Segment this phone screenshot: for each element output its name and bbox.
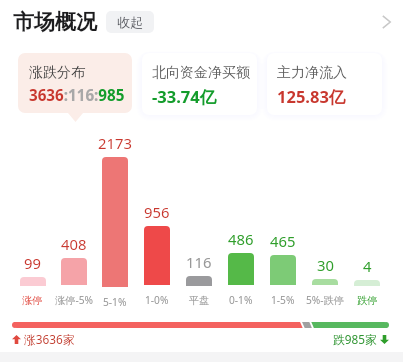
staticText: 465 bbox=[270, 231, 296, 251]
staticText: 956 bbox=[144, 202, 170, 222]
button[interactable] bbox=[186, 276, 212, 286]
staticText: 486 bbox=[228, 229, 254, 249]
staticText: 5-1% bbox=[103, 295, 127, 307]
button[interactable]: 收起 bbox=[106, 11, 154, 33]
staticText: 市场概况 bbox=[13, 9, 97, 35]
staticText: 涨停-5% bbox=[55, 293, 93, 307]
button[interactable] bbox=[61, 258, 87, 285]
button[interactable] bbox=[228, 253, 254, 285]
staticText: -33.74亿 bbox=[152, 85, 217, 108]
staticText: 99 bbox=[24, 253, 41, 273]
button[interactable]: 涨3636家 bbox=[12, 331, 75, 347]
staticText: 0-1% bbox=[229, 293, 253, 307]
staticText: 3636:116:985 bbox=[29, 85, 125, 106]
button[interactable]: 涨跌分布 bbox=[18, 53, 132, 113]
staticText: 408 bbox=[61, 234, 87, 254]
staticText: 125.83亿 bbox=[277, 85, 346, 108]
staticText: 主力净流入 bbox=[277, 64, 347, 82]
button[interactable]: 北向资金净买额 bbox=[142, 53, 257, 115]
button[interactable] bbox=[102, 157, 128, 287]
staticText: 收起 bbox=[117, 14, 143, 30]
button[interactable]: 跌985家 bbox=[333, 331, 389, 347]
button[interactable] bbox=[20, 277, 46, 286]
staticText: 1-0% bbox=[145, 293, 169, 307]
button[interactable] bbox=[144, 226, 170, 285]
staticText: 跌985家 bbox=[333, 331, 377, 347]
button[interactable] bbox=[354, 280, 380, 286]
staticText: 涨跌分布 bbox=[29, 64, 85, 82]
staticText: 平盘 bbox=[189, 294, 210, 307]
button[interactable]: 主力净流入 bbox=[267, 53, 382, 115]
staticText: 涨停 bbox=[22, 294, 43, 307]
staticText: 跌停 bbox=[357, 294, 378, 307]
button[interactable] bbox=[312, 279, 338, 285]
staticText: 116 bbox=[186, 252, 212, 272]
staticText: 1-5% bbox=[271, 293, 295, 307]
staticText: 2173 bbox=[98, 133, 132, 153]
staticText: 5%-跌停 bbox=[306, 293, 344, 307]
staticText: 北向资金净买额 bbox=[152, 64, 250, 82]
button[interactable] bbox=[270, 255, 296, 285]
staticText: 4 bbox=[363, 256, 372, 276]
button[interactable]: More details bbox=[371, 7, 401, 37]
staticText: 30 bbox=[317, 255, 334, 275]
staticText: 涨3636家 bbox=[24, 331, 75, 347]
